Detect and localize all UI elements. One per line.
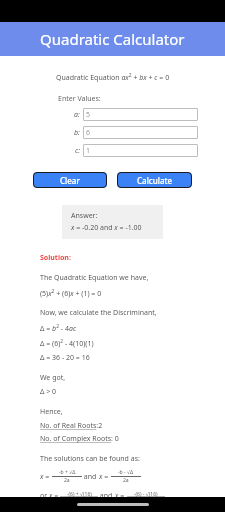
staticText: Solution: — [40, 253, 71, 263]
staticText: Hence, — [40, 407, 63, 417]
staticText: 2a — [64, 477, 70, 484]
button[interactable]: 5 — [83, 108, 198, 121]
staticText: 5 — [86, 110, 91, 120]
button[interactable]: Calculate — [117, 172, 192, 188]
staticText: Quadratic Calculator — [40, 29, 185, 49]
staticText: Answer: — [71, 211, 98, 221]
staticText: (5)x2 + (6)x + (1) = 0 — [40, 288, 102, 298]
staticText: Calculate — [137, 175, 173, 186]
button[interactable]: Clear — [33, 172, 107, 188]
staticText: The Quadratic Equation we have, — [40, 273, 149, 283]
staticText: -b + √Δ — [59, 469, 76, 476]
staticText: We got, — [40, 373, 66, 383]
staticText: and — [98, 491, 115, 497]
staticText: Δ > 0 — [40, 387, 57, 397]
staticText: c: — [75, 146, 80, 156]
staticText: No. of Complex Roots: 0 — [40, 434, 119, 444]
staticText: Clear — [60, 175, 80, 186]
staticText: 2a — [123, 477, 129, 484]
staticText: Δ = b2 - 4ac — [40, 323, 77, 333]
staticText: and — [82, 472, 99, 482]
staticText: x = — [40, 472, 52, 482]
staticText: Δ = 36 - 20 = 16 — [40, 353, 90, 363]
staticText: Quadratic Equation ax2 + bx + c = 0 — [56, 72, 170, 82]
staticText: 6 — [86, 128, 91, 138]
staticText: 1 — [86, 146, 91, 156]
staticText: -b - √Δ — [118, 469, 134, 476]
staticText: x = -0.20 and x = -1.00 — [71, 223, 142, 233]
button[interactable]: 1 — [83, 144, 198, 157]
staticText: The solutions can be found as: — [40, 454, 140, 464]
staticText: No. of Real Roots:2 — [40, 421, 103, 431]
staticText: or x = — [40, 491, 60, 497]
staticText: x = — [115, 491, 127, 497]
staticText: Now, we calculate the Discriminant, — [40, 308, 157, 318]
staticText: Δ = (6)2 - 4(10)(1) — [40, 338, 94, 348]
staticText: -(6) + √(16) — [67, 491, 92, 497]
staticText: a: — [74, 110, 80, 120]
staticText: -(6) - √(16) — [134, 491, 158, 497]
button[interactable]: 6 — [83, 126, 198, 139]
staticText: b: — [74, 128, 80, 138]
staticText: Enter Values: — [58, 94, 101, 104]
staticText: x = — [99, 472, 111, 482]
